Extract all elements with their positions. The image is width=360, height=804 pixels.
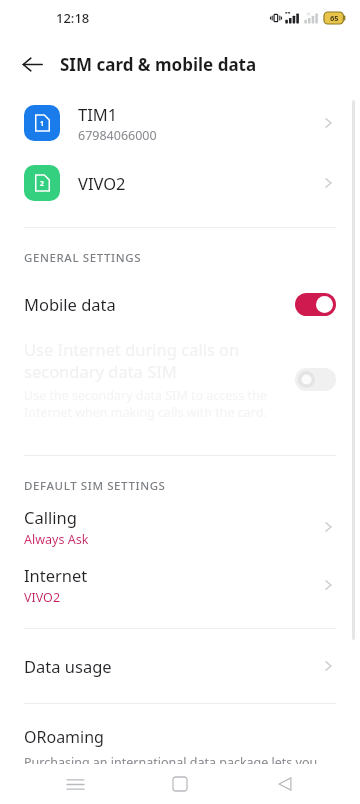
staticText: Mobile data xyxy=(24,293,295,315)
button[interactable]: Back xyxy=(255,764,315,804)
staticText: VIVO2 xyxy=(24,589,61,606)
staticText: 65 xyxy=(330,13,339,23)
staticText: GENERAL SETTINGS xyxy=(24,250,142,266)
button[interactable]: Mobile data xyxy=(0,278,360,330)
staticText: SIM card & mobile data xyxy=(60,53,257,76)
staticText: ORoaming xyxy=(24,726,104,748)
button[interactable]: 1 xyxy=(0,92,360,154)
staticText: 2 xyxy=(40,179,45,189)
staticText: Internet when making calls with the card… xyxy=(24,404,267,421)
staticText: VIVO2 xyxy=(78,172,126,194)
staticText: Internet xyxy=(24,564,88,586)
button[interactable]: Back xyxy=(12,44,52,84)
button[interactable]: Internet xyxy=(0,564,360,606)
button[interactable]: Data usage xyxy=(0,629,360,703)
staticText: DEFAULT SIM SETTINGS xyxy=(24,478,166,494)
staticText: Use the secondary data SIM to access the xyxy=(24,387,267,404)
staticText: TIM1 xyxy=(78,103,118,125)
staticText: secondary data SIM xyxy=(24,360,177,382)
button[interactable]: Home xyxy=(150,764,210,804)
button[interactable]: Use Internet during calls on xyxy=(0,330,360,429)
staticText: 12:18 xyxy=(56,9,90,27)
button[interactable]: Recent apps xyxy=(45,764,105,804)
button[interactable]: Calling xyxy=(0,506,360,548)
staticText: Purchasing an international data package… xyxy=(24,754,318,764)
staticText: Use Internet during calls on xyxy=(24,338,240,360)
staticText: 67984066000 xyxy=(78,127,157,144)
staticText: Always Ask xyxy=(24,531,89,548)
staticText: Calling xyxy=(24,506,77,528)
staticText: Data usage xyxy=(24,655,112,677)
staticText: 1 xyxy=(40,119,45,129)
button[interactable]: 2 xyxy=(0,154,360,212)
